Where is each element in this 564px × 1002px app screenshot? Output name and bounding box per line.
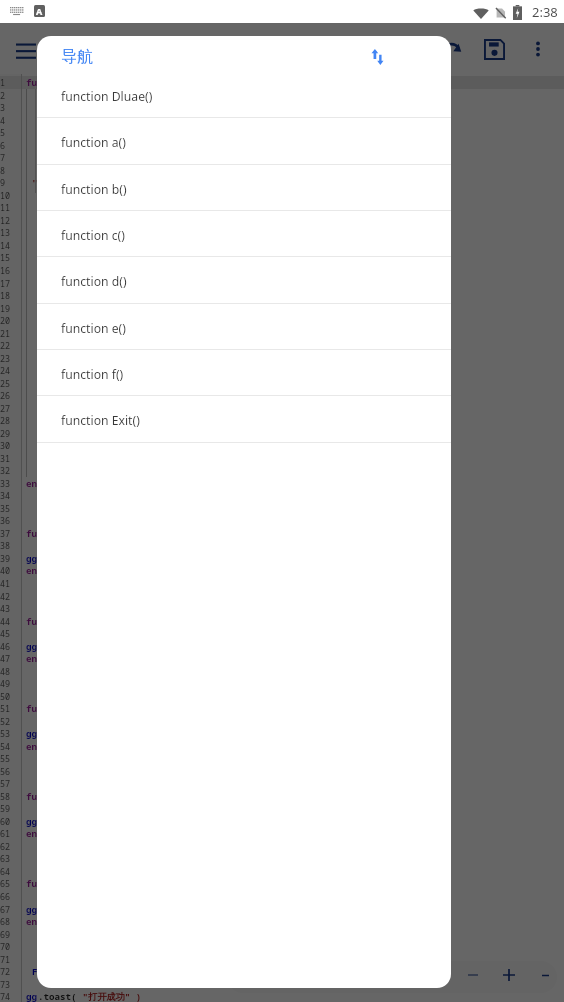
staticText: 73 — [0, 979, 11, 990]
staticText: 67 — [0, 904, 11, 915]
staticText: 60 — [0, 816, 11, 827]
staticText: 35 — [0, 503, 11, 514]
staticText: 11 — [0, 202, 11, 213]
staticText: 2 — [0, 90, 6, 101]
staticText: 9 — [0, 177, 6, 188]
button[interactable]: More options — [518, 29, 558, 69]
button[interactable]: function Dluae() — [37, 72, 451, 118]
staticText: 64 — [0, 866, 11, 877]
staticText: function — [26, 790, 71, 803]
button[interactable]: Save — [474, 29, 514, 69]
staticText: 42 — [0, 591, 11, 602]
staticText: 10 — [0, 190, 11, 201]
staticText: function — [26, 615, 71, 628]
staticText: function a() — [61, 134, 126, 151]
staticText: gg — [26, 552, 38, 565]
staticText: Dluae() — [44, 226, 83, 239]
staticText: gg — [26, 727, 38, 740]
staticText: function — [26, 76, 71, 89]
staticText: 62 — [0, 841, 11, 852]
staticText: 40 — [0, 565, 11, 576]
button[interactable]: Sort — [361, 41, 393, 73]
staticText: 63 — [0, 853, 11, 864]
staticText: if menu == 3 then — [38, 414, 132, 427]
staticText: 2:38 — [532, 3, 558, 21]
staticText: 36 — [0, 515, 11, 526]
staticText: end — [26, 477, 43, 490]
staticText: 6 — [0, 140, 6, 151]
button[interactable]: function b() — [37, 165, 451, 211]
staticText: 20 — [0, 315, 11, 326]
staticText: 41 — [0, 578, 11, 589]
button[interactable]: Redo — [432, 29, 472, 69]
staticText: function Dluae() — [61, 88, 153, 105]
button[interactable]: function a() — [37, 118, 451, 164]
staticText: 59 — [0, 803, 11, 814]
staticText: 57 — [0, 778, 11, 789]
button[interactable]: Zoom in — [495, 961, 523, 989]
staticText: "function b()", — [44, 114, 127, 127]
staticText: 17 — [0, 278, 11, 289]
staticText: end — [26, 740, 43, 753]
staticText: 74 — [0, 991, 11, 1002]
button[interactable]: function f() — [37, 350, 451, 396]
button[interactable]: Zoom out — [459, 961, 487, 989]
staticText: 47 — [0, 653, 11, 664]
staticText: 14 — [0, 240, 11, 251]
staticText: 69 — [0, 929, 11, 940]
staticText: end — [26, 915, 43, 928]
button[interactable]: function d() — [37, 257, 451, 303]
staticText: if menu == 1 then — [38, 314, 132, 327]
button[interactable]: Menu — [6, 29, 46, 69]
staticText: 18 — [0, 290, 11, 301]
staticText: end — [38, 389, 55, 402]
staticText: gg — [26, 990, 38, 1002]
staticText: function b() — [61, 181, 127, 198]
staticText: 13 — [0, 227, 11, 238]
button[interactable]: Collapse — [533, 963, 557, 987]
staticText: function f() — [61, 366, 124, 383]
staticText: 导航 — [61, 47, 93, 67]
staticText: function — [26, 527, 71, 540]
staticText: 45 — [0, 628, 11, 639]
staticText: "function c()", — [44, 126, 127, 139]
staticText: 5 — [0, 127, 6, 138]
staticText: 49 — [0, 678, 11, 689]
staticText: 31 — [0, 453, 11, 464]
button[interactable]: function e() — [37, 304, 451, 350]
button[interactable]: function c() — [37, 211, 451, 257]
staticText: gg — [26, 903, 38, 916]
staticText: 56 — [0, 766, 11, 777]
staticText: Function — [32, 965, 77, 978]
staticText: 53 — [0, 728, 11, 739]
staticText: 16 — [0, 265, 11, 276]
staticText: 37 — [0, 528, 11, 539]
staticText: 32 — [0, 465, 11, 476]
staticText: 44 — [0, 616, 11, 627]
staticText: function c() — [61, 227, 125, 244]
staticText: end — [26, 827, 43, 840]
staticText: 54 — [0, 741, 11, 752]
staticText: 48 — [0, 666, 11, 677]
staticText: 28 — [0, 415, 11, 426]
staticText: 50 — [0, 691, 11, 702]
staticText: 70 — [0, 941, 11, 952]
staticText: 1 — [0, 77, 6, 88]
button[interactable]: function Exit() — [37, 396, 451, 442]
